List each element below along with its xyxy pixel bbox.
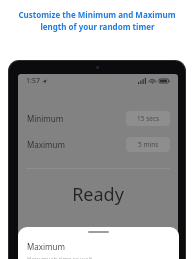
staticText: Maximum bbox=[27, 241, 65, 252]
staticText: 15 secs bbox=[137, 114, 160, 123]
staticText: 1:57 bbox=[26, 76, 40, 86]
button[interactable]: 5 mins bbox=[126, 137, 170, 152]
button[interactable]: Maximum bbox=[18, 227, 179, 259]
staticText: Minimum bbox=[27, 113, 64, 124]
staticText: Maximum bbox=[27, 139, 65, 150]
staticText: How much time to wait bbox=[27, 255, 93, 259]
staticText: Ready bbox=[18, 182, 178, 207]
staticText: length of your random timer bbox=[40, 21, 155, 32]
staticText: Customize the Minimum and Maximum bbox=[18, 9, 176, 20]
button[interactable]: Minimum bbox=[18, 109, 178, 127]
button[interactable]: 15 secs bbox=[126, 111, 170, 126]
staticText: 5 mins bbox=[138, 140, 159, 149]
button[interactable]: Maximum bbox=[18, 135, 178, 153]
